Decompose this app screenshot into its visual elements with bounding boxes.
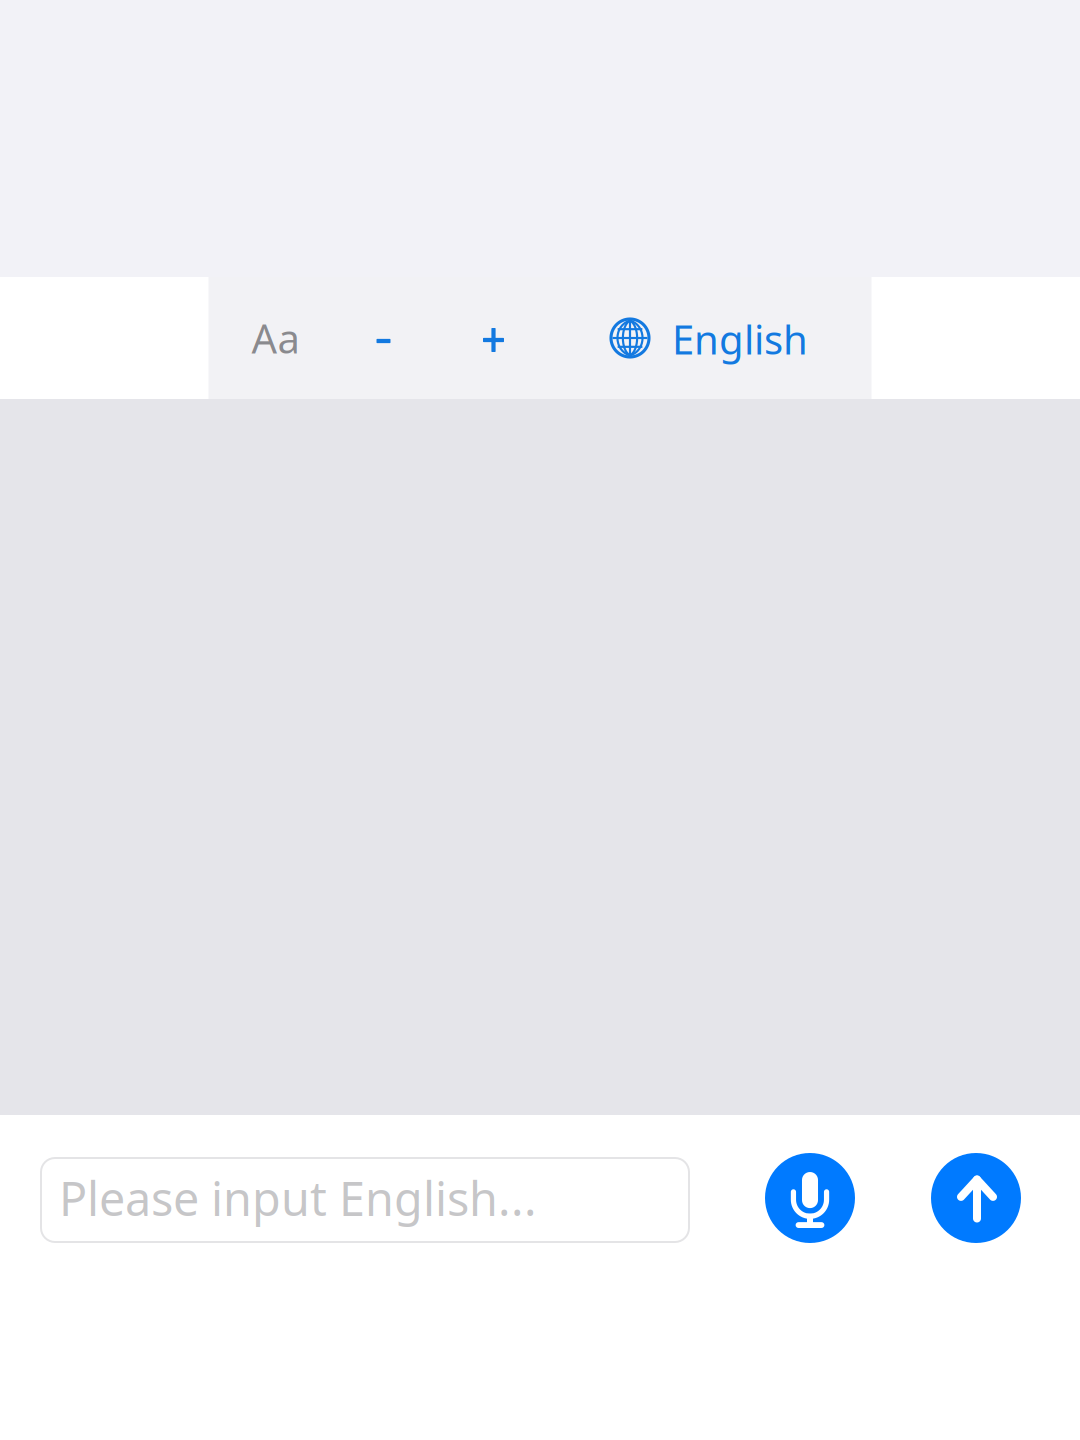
button[interactable]: Send [931, 1153, 1021, 1243]
button[interactable]: Decrease text size [328, 280, 438, 402]
button[interactable]: Aa [211, 277, 339, 399]
button[interactable]: Increase text size [438, 279, 548, 401]
staticText: English [672, 312, 808, 365]
button[interactable]: Voice input [765, 1153, 855, 1243]
button[interactable]: English [582, 277, 871, 399]
staticText: Please input English... [59, 1167, 537, 1229]
staticText: Aa [251, 311, 299, 364]
button[interactable]: Please input English... [41, 1156, 689, 1240]
